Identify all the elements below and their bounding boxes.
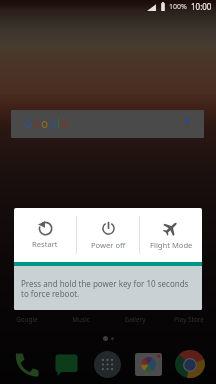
staticText: 100%: [169, 2, 187, 12]
button[interactable]: Gallery: [108, 315, 162, 324]
staticText: Flight Mode: [150, 240, 193, 250]
button[interactable]: Camera: [128, 350, 169, 378]
button[interactable]: Chrome: [169, 350, 210, 378]
staticText: Power off: [91, 240, 126, 250]
button[interactable]: Power off: [77, 208, 139, 262]
staticText: e: [61, 115, 68, 131]
button[interactable]: Play Store: [162, 315, 216, 324]
staticText: G: [24, 115, 33, 131]
staticText: Press and hold the power key for 10 seco…: [21, 278, 189, 300]
other: Voice search: [183, 116, 191, 132]
button[interactable]: Google: [0, 315, 54, 324]
staticText: g: [49, 115, 57, 131]
button[interactable]: Restart: [14, 208, 76, 262]
staticText: l: [57, 115, 61, 131]
button[interactable]: Messages: [46, 350, 87, 378]
staticText: o: [41, 115, 49, 131]
staticText: Gallery: [124, 315, 146, 324]
button[interactable]: G: [11, 110, 204, 138]
button[interactable]: Phone: [6, 350, 46, 378]
staticText: Music: [72, 315, 90, 324]
staticText: o: [33, 115, 41, 131]
staticText: Google: [16, 315, 38, 324]
button[interactable]: Flight Mode: [140, 208, 202, 262]
button[interactable]: Music: [54, 315, 108, 324]
button[interactable]: Apps: [87, 350, 128, 378]
staticText: Play Store: [174, 315, 204, 324]
staticText: Restart: [32, 239, 58, 249]
staticText: 10:00: [191, 1, 212, 12]
